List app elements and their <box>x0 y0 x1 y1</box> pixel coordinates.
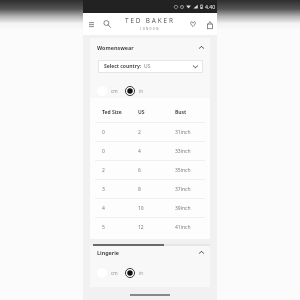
staticText: Womenswear <box>97 44 134 51</box>
staticText: 2 <box>138 129 141 136</box>
staticText: US <box>138 109 145 116</box>
button[interactable]: Lingerie <box>90 246 210 258</box>
staticText: 8 <box>138 186 141 193</box>
staticText: 33inch <box>175 148 191 155</box>
button[interactable]: in <box>125 86 144 96</box>
button[interactable]: Menu <box>84 17 99 32</box>
button[interactable]: Select country: <box>98 60 203 73</box>
staticText: 35inch <box>175 167 191 174</box>
staticText: 31inch <box>175 129 191 136</box>
staticText: 4.40 <box>205 3 216 10</box>
staticText: 39inch <box>175 205 191 212</box>
button[interactable]: Womenswear <box>90 38 210 56</box>
staticText: LONDON <box>140 27 160 31</box>
staticText: US <box>144 63 151 70</box>
button[interactable]: Search <box>99 16 114 31</box>
staticText: 0 <box>102 148 105 155</box>
staticText: cm <box>111 270 118 276</box>
staticText: 6 <box>138 167 141 174</box>
staticText: TED BAKER <box>125 16 175 25</box>
staticText: 10 <box>138 205 144 212</box>
staticText: 4 <box>102 205 105 212</box>
staticText: 3 <box>102 186 105 193</box>
staticText: cm <box>111 88 118 94</box>
button[interactable]: in <box>125 268 144 278</box>
staticText: 2 <box>102 167 105 174</box>
staticText: Ted Size <box>102 109 122 116</box>
button[interactable]: Shopping bag <box>202 17 217 32</box>
staticText: 37inch <box>175 186 191 193</box>
staticText: 0 <box>102 129 105 136</box>
button[interactable]: cm <box>97 268 118 278</box>
staticText: in <box>139 270 144 276</box>
staticText: 4 <box>138 148 141 155</box>
button[interactable]: Wishlist <box>185 16 200 31</box>
staticText: Bust <box>175 109 187 116</box>
staticText: in <box>139 88 144 94</box>
staticText: 5 <box>102 224 105 231</box>
button[interactable]: cm <box>97 86 118 96</box>
staticText: Lingerie <box>97 249 119 256</box>
staticText: Select country: <box>104 63 142 70</box>
staticText: 41inch <box>175 224 191 231</box>
staticText: 12 <box>138 224 144 231</box>
